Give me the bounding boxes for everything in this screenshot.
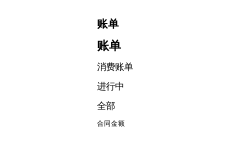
staticText: 合同金额 [97,119,125,128]
staticText: 全部 [97,100,115,112]
staticText: 账单 [97,38,121,53]
staticText: 消费账单 [97,61,133,73]
staticText: 账单 [97,17,119,30]
staticText: 进行中 [97,81,124,92]
